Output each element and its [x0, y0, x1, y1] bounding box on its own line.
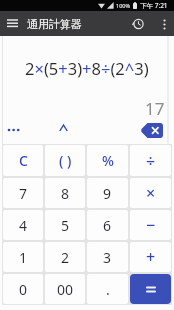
button[interactable]: %: [87, 145, 128, 176]
staticText: +: [146, 246, 156, 268]
button[interactable]: 4: [3, 210, 43, 240]
staticText: 6: [103, 216, 112, 235]
staticText: C: [19, 151, 28, 170]
button[interactable]: [130, 274, 171, 304]
staticText: 9: [103, 184, 112, 203]
button[interactable]: 0: [3, 274, 43, 304]
staticText: ÷: [146, 150, 156, 172]
button[interactable]: 8: [45, 178, 85, 208]
staticText: ( ): [59, 151, 72, 170]
staticText: 2: [61, 248, 70, 267]
button[interactable]: [156, 13, 172, 35]
button[interactable]: [7, 126, 22, 134]
staticText: 0: [19, 280, 28, 299]
staticText: .: [106, 280, 110, 299]
button[interactable]: [59, 124, 68, 132]
staticText: %: [102, 151, 114, 170]
staticText: −: [146, 214, 156, 236]
button[interactable]: [0, 11, 25, 36]
staticText: 17: [145, 97, 165, 120]
button[interactable]: [141, 123, 163, 138]
button[interactable]: 00: [45, 274, 85, 304]
button[interactable]: −: [130, 210, 171, 240]
button[interactable]: [127, 13, 149, 35]
button[interactable]: 9: [87, 178, 128, 208]
staticText: 3: [103, 248, 112, 267]
staticText: 8: [61, 184, 70, 203]
staticText: 下午 7:21: [140, 1, 168, 10]
button[interactable]: 6: [87, 210, 128, 240]
button[interactable]: 5: [45, 210, 85, 240]
button[interactable]: 7: [3, 178, 43, 208]
staticText: 00: [57, 280, 74, 299]
button[interactable]: ×: [130, 178, 171, 208]
button[interactable]: 3: [87, 242, 128, 272]
staticText: ×: [146, 182, 156, 204]
button[interactable]: C: [3, 145, 43, 176]
button[interactable]: +: [130, 242, 171, 272]
button[interactable]: ( ): [45, 145, 85, 176]
staticText: 100%: [116, 2, 131, 9]
button[interactable]: .: [87, 274, 128, 304]
staticText: 1: [19, 248, 28, 267]
staticText: 4: [19, 216, 28, 235]
staticText: 5: [61, 216, 70, 235]
staticText: 2×(5+3)+8÷(2^3): [25, 57, 149, 79]
staticText: 7: [19, 184, 28, 203]
staticText: 通用計算器: [27, 17, 82, 31]
button[interactable]: 1: [3, 242, 43, 272]
button[interactable]: 2: [45, 242, 85, 272]
button[interactable]: ÷: [130, 145, 171, 176]
